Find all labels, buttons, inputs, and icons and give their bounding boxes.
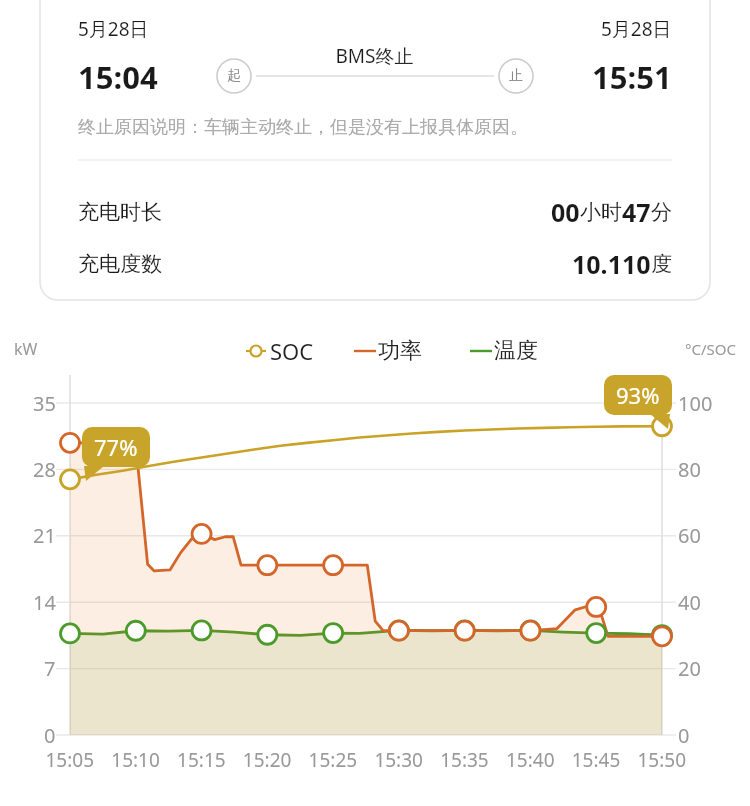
button[interactable]: Charging session detail chart — [0, 0, 750, 806]
